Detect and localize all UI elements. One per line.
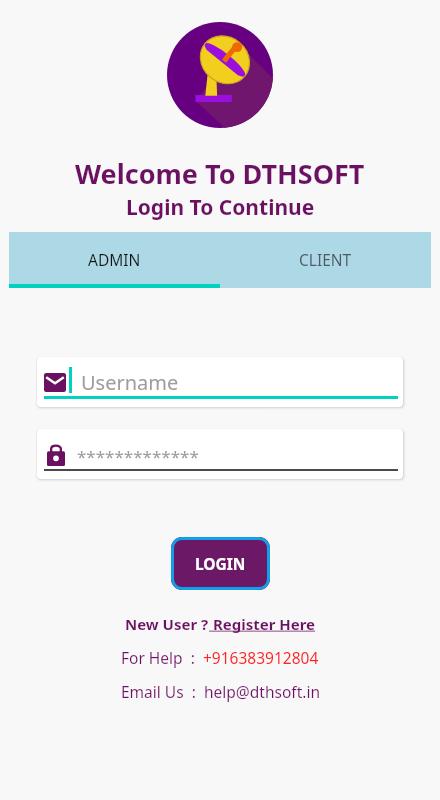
button[interactable]: Email [37,357,403,407]
other: Email [44,373,66,392]
button[interactable]: ADMIN [9,232,220,288]
staticText: Register Here [209,614,316,634]
staticText: Welcome To DTHSOFT [75,155,365,192]
button[interactable]: Register Here [209,614,316,634]
staticText: New User ? [125,614,209,634]
staticText: +916383912804 [203,647,319,668]
staticText: LOGIN [195,553,246,574]
button[interactable]: CLIENT [220,232,431,288]
staticText: CLIENT [299,249,352,270]
staticText: ************* [77,445,199,468]
staticText: Username [81,369,179,396]
staticText: ADMIN [88,249,141,270]
staticText: For Help : [121,647,203,668]
staticText: Email Us : [121,681,204,702]
button[interactable]: Password [37,429,403,479]
button[interactable]: LOGIN [171,537,270,590]
staticText: Login To Continue [126,193,315,222]
other: Password [47,443,65,466]
staticText: help@dthsoft.in [204,681,320,702]
